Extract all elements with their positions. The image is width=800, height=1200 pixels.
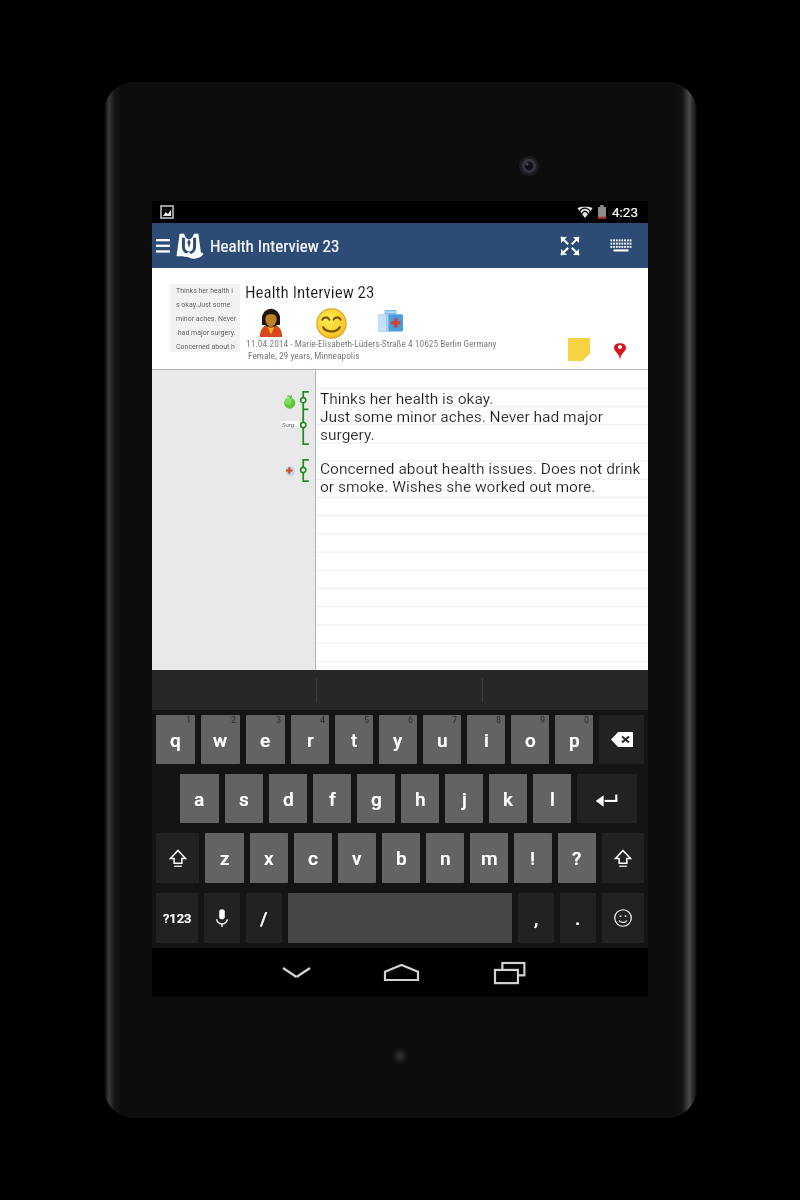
staticText: Concerned about health issues. Does not … <box>320 460 641 496</box>
staticText: h <box>415 788 426 810</box>
staticText: 2 <box>231 715 237 726</box>
button[interactable]: w <box>201 715 240 764</box>
button[interactable]: , <box>518 893 554 943</box>
staticText: Health Interview 23 <box>210 236 340 256</box>
button[interactable]: ! <box>514 833 552 883</box>
staticText: Surg... <box>282 421 299 428</box>
staticText: ?123 <box>163 911 192 926</box>
button[interactable]: / <box>246 893 282 943</box>
button[interactable]: l <box>533 774 571 823</box>
staticText: b <box>396 847 407 869</box>
button[interactable]: d <box>269 774 307 823</box>
staticText: ! <box>530 847 536 869</box>
staticText: ? <box>572 847 582 869</box>
staticText: t <box>351 729 358 751</box>
button[interactable]: a <box>180 774 219 823</box>
staticText: Thinks her health is okay. Just some min… <box>320 390 603 444</box>
staticText: d <box>283 788 294 810</box>
button[interactable]: Home <box>377 951 425 994</box>
staticText: a <box>194 788 205 810</box>
staticText: Female, 29 years, Minneapolis <box>248 350 360 361</box>
staticText: l <box>550 788 555 810</box>
staticText: p <box>569 729 580 751</box>
staticText: w <box>213 729 228 751</box>
staticText: . <box>575 907 581 929</box>
staticText: 9 <box>540 715 546 726</box>
staticText: s <box>239 788 249 810</box>
button[interactable]: t <box>335 715 373 764</box>
button[interactable]: m <box>470 833 508 883</box>
staticText: Health Interview 23 <box>245 282 375 302</box>
button[interactable]: ?123 <box>156 893 198 943</box>
button[interactable]: Geolocation <box>614 340 626 361</box>
staticText: y <box>393 729 403 751</box>
staticText: u <box>437 729 448 751</box>
button[interactable]: j <box>445 774 483 823</box>
button[interactable]: ? <box>558 833 596 883</box>
button[interactable]: b <box>382 833 420 883</box>
button[interactable]: s <box>225 774 263 823</box>
button[interactable]: Enter <box>577 774 637 823</box>
button[interactable]: p <box>555 715 593 764</box>
staticText: 7 <box>452 715 458 726</box>
button[interactable]: f <box>313 774 351 823</box>
button[interactable]: h <box>401 774 439 823</box>
button[interactable]: c <box>294 833 332 883</box>
button[interactable]: Backspace <box>599 715 644 764</box>
button[interactable]: MAXQDA home <box>174 223 206 268</box>
button[interactable]: Hide keyboard <box>272 951 320 994</box>
staticText: 4:23 <box>612 204 639 220</box>
staticText: 3 <box>276 715 282 726</box>
button[interactable]: Shift <box>602 833 644 883</box>
staticText: f <box>329 788 336 810</box>
staticText: g <box>371 788 382 810</box>
button[interactable]: z <box>205 833 244 883</box>
staticText: o <box>525 729 536 751</box>
staticText: i <box>484 729 489 751</box>
staticText: v <box>352 847 362 869</box>
staticText: x <box>264 847 274 869</box>
staticText: 5 <box>364 715 370 726</box>
staticText: e <box>260 729 271 751</box>
button[interactable]: Voice input <box>204 893 240 943</box>
staticText: m <box>481 847 498 869</box>
button[interactable]: Memo <box>568 338 590 361</box>
button[interactable]: Recent apps <box>485 951 533 994</box>
button[interactable]: y <box>379 715 417 764</box>
button[interactable]: r <box>291 715 329 764</box>
button[interactable]: Emoji <box>602 893 644 943</box>
staticText: / <box>260 907 268 929</box>
staticText: 0 <box>584 715 590 726</box>
button[interactable]: k <box>489 774 527 823</box>
button[interactable]: Open navigation drawer <box>152 223 174 268</box>
button[interactable]: Shift <box>156 833 199 883</box>
button[interactable]: q <box>156 715 195 764</box>
staticText: n <box>440 847 451 869</box>
button[interactable]: x <box>250 833 288 883</box>
staticText: 8 <box>496 715 502 726</box>
button[interactable]: Keyboard <box>594 223 648 268</box>
staticText: k <box>503 788 513 810</box>
button[interactable]: . <box>560 893 596 943</box>
staticText: , <box>534 907 539 929</box>
button[interactable]: Fullscreen <box>546 223 594 268</box>
button[interactable]: v <box>338 833 376 883</box>
staticText: r <box>307 729 314 751</box>
staticText: 1 <box>186 715 192 726</box>
staticText: 6 <box>408 715 414 726</box>
button[interactable]: n <box>426 833 464 883</box>
staticText: c <box>308 847 318 869</box>
button[interactable]: u <box>423 715 461 764</box>
staticText: j <box>462 788 467 810</box>
staticText: z <box>220 847 230 869</box>
button[interactable]: o <box>511 715 549 764</box>
staticText: q <box>170 729 181 751</box>
staticText: 4 <box>320 715 326 726</box>
button[interactable]: e <box>246 715 285 764</box>
staticText: 11.04.2014 - Marie-Elisabeth-Lüders-Stra… <box>246 338 497 349</box>
staticText: Thinks her health i s okay.Just some min… <box>176 287 237 351</box>
button[interactable]: i <box>467 715 505 764</box>
button[interactable]: g <box>357 774 395 823</box>
